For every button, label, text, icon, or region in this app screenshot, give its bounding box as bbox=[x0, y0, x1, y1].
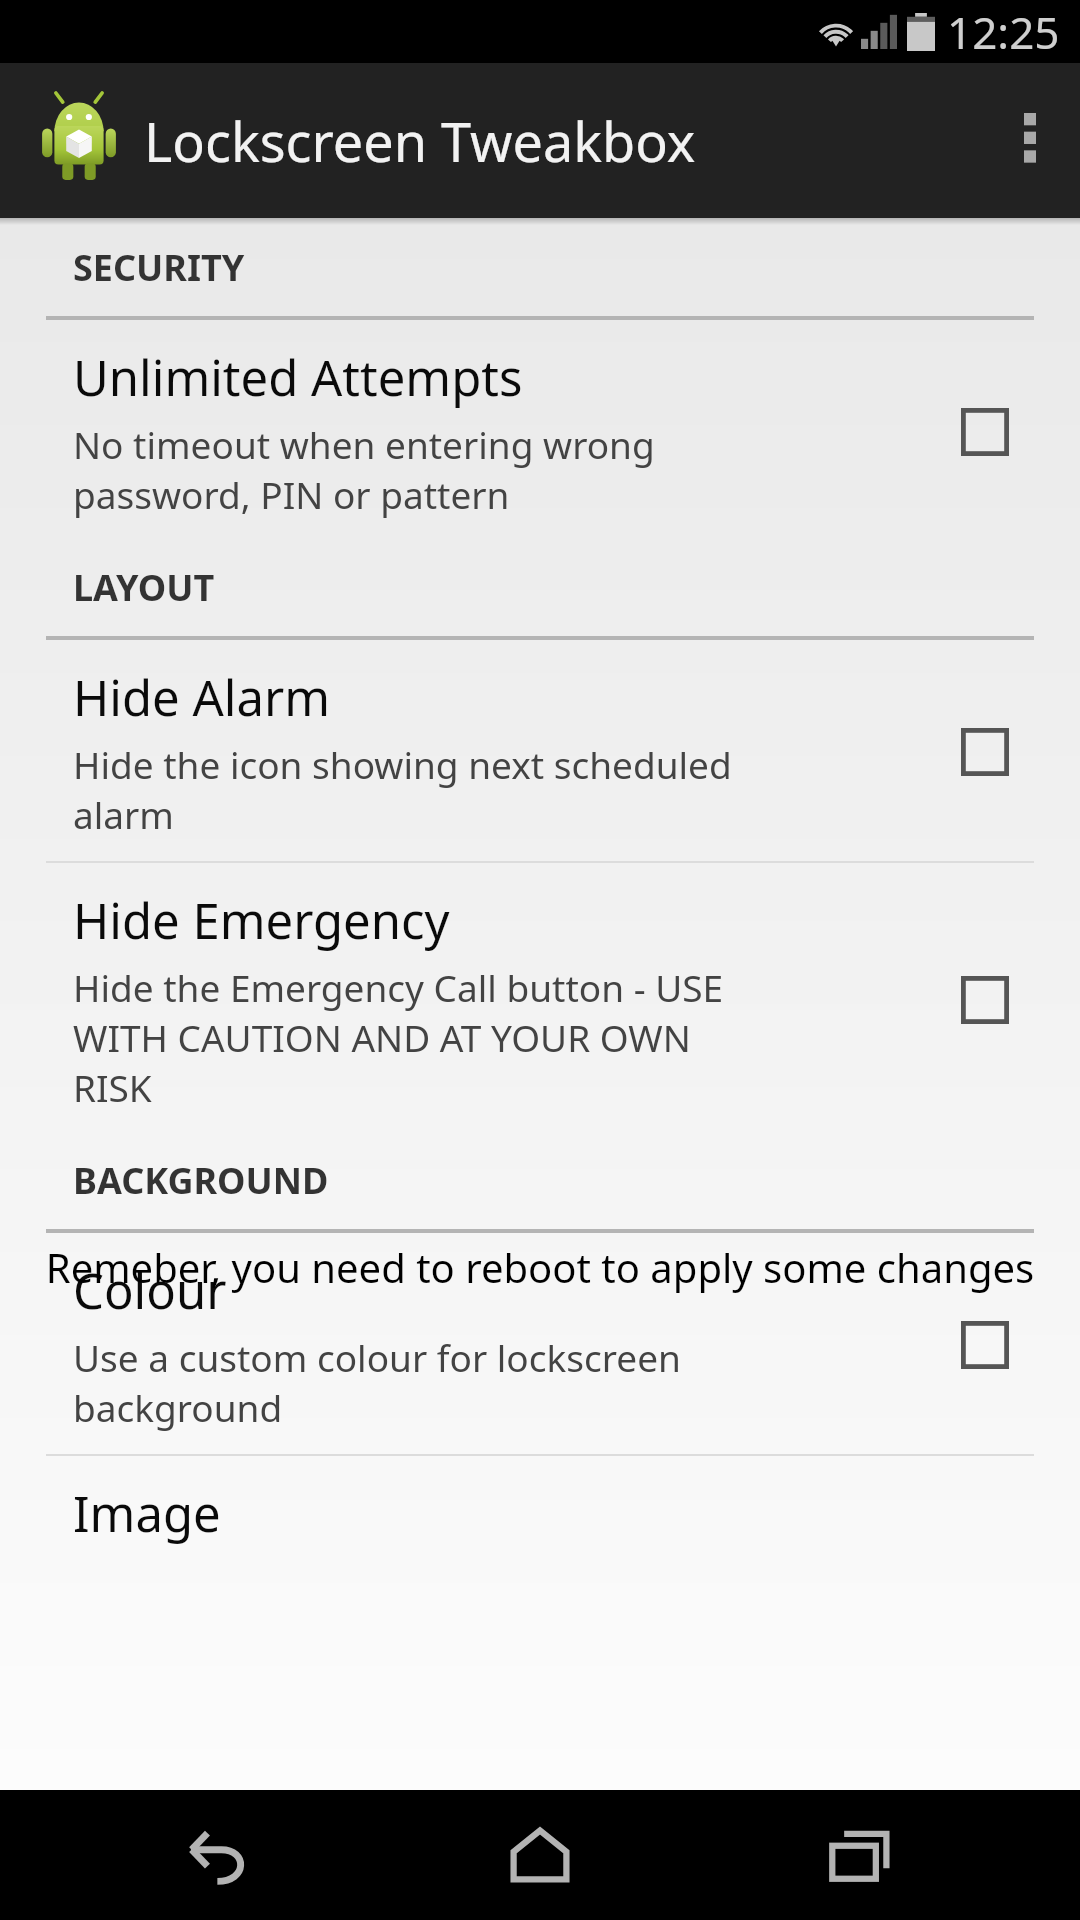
staticText: SECURITY bbox=[73, 243, 245, 292]
staticText: LAYOUT bbox=[73, 563, 215, 612]
button[interactable]: Hide Emergency checkbox bbox=[961, 976, 1009, 1024]
staticText: Lockscreen Tweakbox bbox=[144, 104, 696, 178]
button[interactable]: More options bbox=[980, 63, 1080, 218]
staticText: password, PIN or pattern bbox=[73, 469, 510, 519]
button[interactable]: Hide Alarm checkbox bbox=[961, 728, 1009, 776]
button[interactable]: Unlimited Attempts checkbox bbox=[961, 408, 1009, 456]
staticText: background bbox=[73, 1382, 283, 1432]
button[interactable]: Recent apps bbox=[760, 1790, 960, 1920]
button[interactable]: Back bbox=[120, 1790, 320, 1920]
button[interactable]: Colour checkbox bbox=[961, 1321, 1009, 1369]
staticText: WITH CAUTION AND AT YOUR OWN bbox=[73, 1012, 691, 1062]
staticText: RISK bbox=[73, 1062, 152, 1112]
staticText: 12:25 bbox=[947, 2, 1060, 62]
staticText: No timeout when entering wrong bbox=[73, 419, 655, 469]
staticText: Colour bbox=[73, 1257, 227, 1324]
staticText: Hide the Emergency Call button - USE bbox=[73, 962, 724, 1012]
button[interactable]: Unlimited Attempts bbox=[0, 320, 1080, 541]
staticText: alarm bbox=[73, 789, 174, 839]
button[interactable]: Home bbox=[440, 1790, 640, 1920]
button[interactable]: Colour bbox=[0, 1233, 1080, 1454]
staticText: Remeber, you need to reboot to apply som… bbox=[12, 1240, 1068, 1294]
staticText: BACKGROUND bbox=[73, 1156, 329, 1205]
staticText: Hide Emergency bbox=[73, 887, 450, 954]
staticText: Use a custom colour for lockscreen bbox=[73, 1332, 681, 1382]
button[interactable]: Hide Emergency bbox=[0, 863, 1080, 1134]
staticText: Hide Alarm bbox=[73, 664, 330, 731]
staticText: Hide the icon showing next scheduled bbox=[73, 739, 732, 789]
button[interactable]: Image bbox=[0, 1456, 1080, 1569]
staticText: Unlimited Attempts bbox=[73, 344, 523, 411]
staticText: Image bbox=[73, 1480, 221, 1547]
button[interactable]: Hide Alarm bbox=[0, 640, 1080, 861]
